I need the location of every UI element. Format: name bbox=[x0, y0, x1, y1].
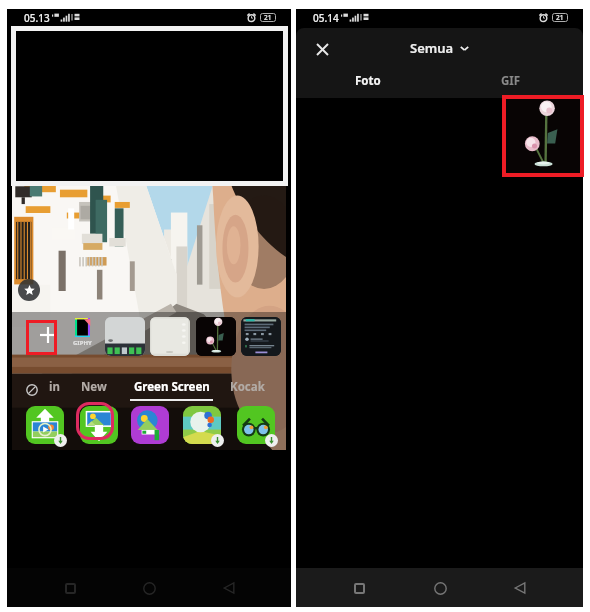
button[interactable]: Recents bbox=[342, 571, 376, 605]
button[interactable]: Effect 2 bbox=[80, 406, 118, 444]
button[interactable]: Semua bbox=[404, 36, 475, 60]
staticText: Kocak bbox=[230, 379, 265, 395]
staticText: 05.13 bbox=[24, 11, 50, 25]
button[interactable]: Effect preview bbox=[150, 317, 190, 356]
button[interactable]: Home bbox=[132, 571, 166, 605]
button[interactable]: No effect bbox=[23, 381, 41, 399]
button[interactable]: Effect preview bbox=[241, 317, 281, 356]
button[interactable]: Kocak bbox=[230, 379, 265, 395]
button[interactable]: Foto bbox=[296, 70, 439, 92]
staticText: Foto bbox=[355, 73, 381, 89]
staticText: 21 bbox=[264, 13, 272, 22]
button[interactable]: Home bbox=[423, 571, 457, 605]
button[interactable]: Photo bbox=[506, 99, 580, 173]
button[interactable]: Favorites bbox=[18, 279, 40, 301]
staticText: 21 bbox=[556, 13, 564, 22]
staticText: Semua bbox=[410, 39, 454, 57]
button[interactable]: GIF bbox=[439, 70, 583, 92]
staticText: GIPHY bbox=[73, 339, 92, 347]
button[interactable]: GIPHY bbox=[73, 318, 92, 347]
button[interactable]: Green Screen bbox=[130, 379, 213, 401]
staticText: New bbox=[81, 379, 107, 395]
button[interactable]: Close bbox=[306, 33, 338, 65]
staticText: Green Screen bbox=[134, 379, 210, 395]
button[interactable]: Effect preview bbox=[105, 317, 145, 356]
button[interactable]: Effect 1 bbox=[26, 406, 64, 444]
button[interactable]: Effect 4 bbox=[183, 406, 221, 444]
staticText: 05.14 bbox=[313, 11, 339, 25]
button[interactable]: Effect 5 bbox=[237, 406, 275, 444]
button[interactable]: Back bbox=[212, 571, 246, 605]
staticText: GIF bbox=[501, 73, 521, 89]
button[interactable]: New bbox=[81, 379, 107, 395]
button[interactable]: Recents bbox=[53, 571, 87, 605]
button[interactable]: Effect 3 bbox=[131, 406, 169, 444]
button[interactable]: Add effect bbox=[33, 320, 63, 350]
button[interactable]: in bbox=[49, 379, 60, 395]
button[interactable]: Effect preview bbox=[196, 317, 236, 356]
button[interactable]: Back bbox=[503, 571, 537, 605]
staticText: in bbox=[49, 379, 60, 395]
